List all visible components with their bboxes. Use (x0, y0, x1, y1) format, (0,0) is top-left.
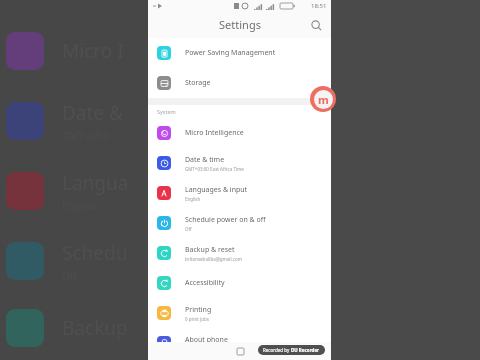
staticText: britonsebuliba@gmail.com (185, 256, 242, 262)
staticText: English (185, 196, 201, 202)
button[interactable]: Power Saving Management (148, 38, 331, 68)
staticText: Recorded by (263, 347, 291, 353)
staticText: m (318, 92, 329, 107)
staticText: Off (185, 226, 192, 232)
staticText: Languages & input (185, 185, 248, 195)
button[interactable]: Floating assistant (310, 86, 336, 112)
button[interactable]: Accessibility (148, 268, 331, 298)
button[interactable]: Home (231, 342, 249, 360)
staticText: Printing (185, 305, 212, 315)
staticText: 18:51 (311, 2, 327, 10)
staticText: 0 print jobs (185, 316, 209, 322)
button[interactable]: Schedule power on & off (148, 208, 331, 238)
staticText: System (157, 108, 176, 115)
button[interactable]: Backup & reset (148, 238, 331, 268)
staticText: Power Saving Management (185, 48, 276, 58)
button[interactable]: Languages & input (148, 178, 331, 208)
staticText: Settings (219, 17, 261, 32)
button[interactable]: Printing (148, 298, 331, 328)
staticText: DU Recorder (291, 347, 320, 353)
button[interactable]: Search (307, 16, 325, 34)
button[interactable]: Date & time (148, 148, 331, 178)
staticText: GMT+03:00 East Africa Time (185, 166, 244, 172)
staticText: Date & time (185, 155, 225, 165)
button[interactable]: About phone (148, 328, 331, 358)
button[interactable]: Micro Intelligence (148, 118, 331, 148)
staticText: Accessibility (185, 278, 225, 288)
staticText: Micro Intelligence (185, 128, 244, 138)
staticText: Storage (185, 78, 211, 88)
button[interactable]: Storage (148, 68, 331, 98)
staticText: Schedule power on & off (185, 215, 266, 225)
staticText: Backup & reset (185, 245, 235, 255)
staticText: About phone (185, 335, 228, 345)
